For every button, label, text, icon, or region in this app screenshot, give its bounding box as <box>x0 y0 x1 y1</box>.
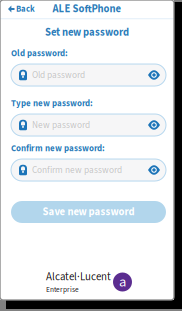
staticText: Confirm new password: <box>11 142 105 155</box>
staticText: Old password: <box>11 47 68 60</box>
staticText: Old password <box>32 68 85 82</box>
staticText: a <box>119 272 126 292</box>
button[interactable]: Show Type new password: <box>145 116 163 134</box>
button[interactable]: Show Confirm new password: <box>145 161 163 179</box>
staticText: Back <box>16 3 35 15</box>
staticText: Save new password <box>42 204 134 220</box>
button[interactable]: Back <box>0 0 41 18</box>
staticText: Enterprise <box>46 285 79 295</box>
button[interactable]: Save new password <box>11 201 166 223</box>
staticText: Set new password <box>45 25 129 40</box>
staticText: New password <box>32 118 90 132</box>
staticText: Confirm new password <box>32 163 122 177</box>
button[interactable]: Show Old password: <box>145 66 163 84</box>
staticText: Type new password: <box>11 97 93 110</box>
staticText: Alcatel·Lucent <box>46 269 111 285</box>
staticText: ALE SoftPhone <box>52 1 121 17</box>
